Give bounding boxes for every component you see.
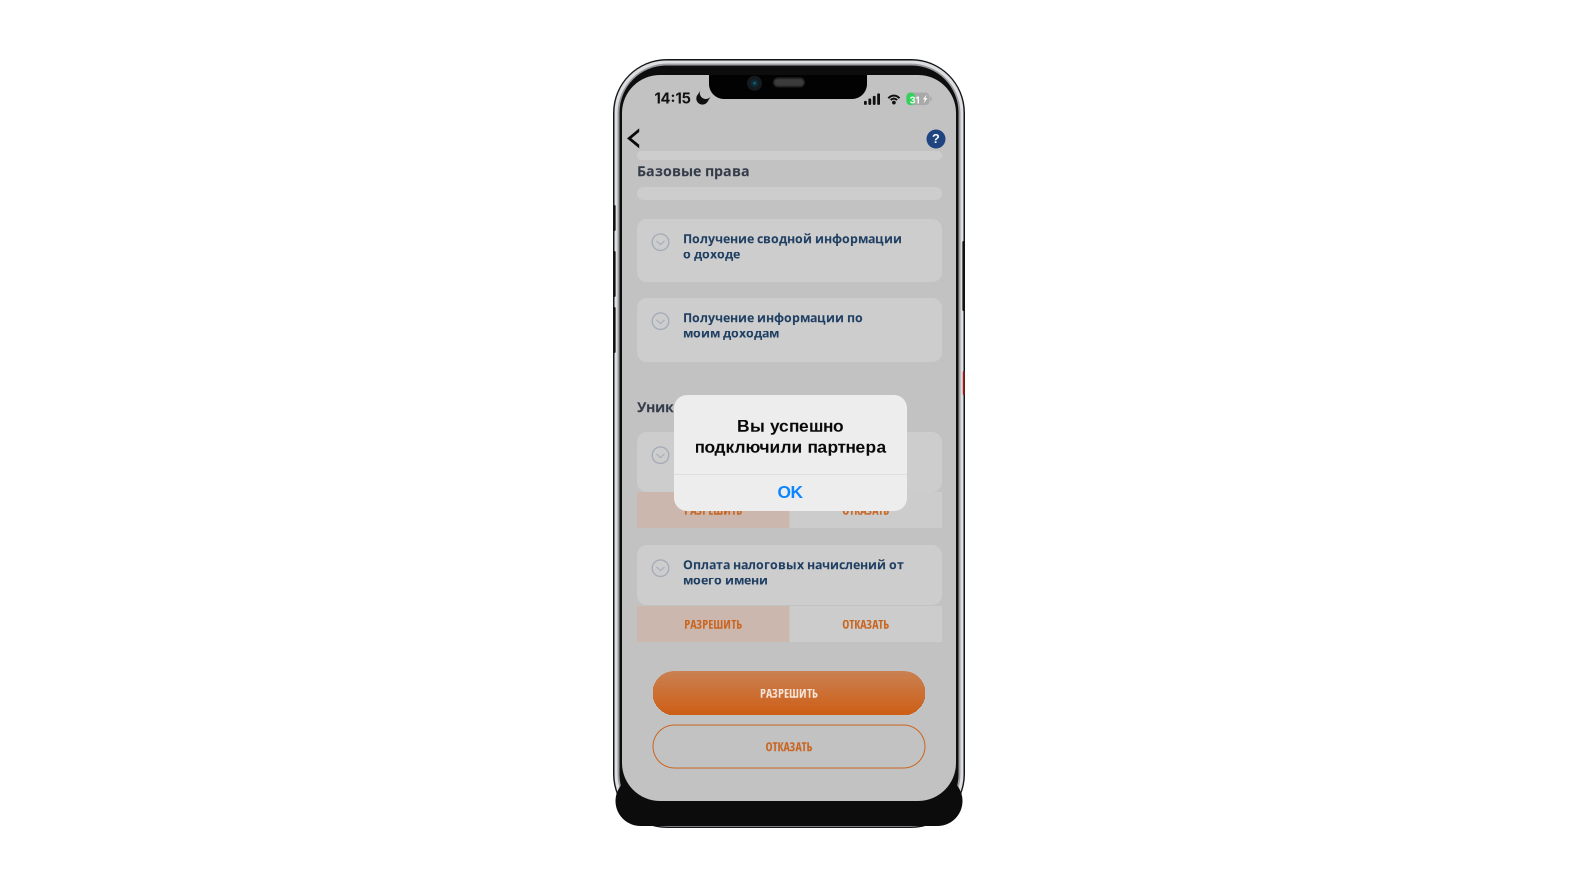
staticText: Оплата налоговых начислений от [683,556,904,573]
staticText: подключили партнера [694,437,886,456]
button[interactable]: ОТКАЗАТЬ [653,725,925,768]
button[interactable]: РАЗРЕШИТЬ [637,606,789,642]
button[interactable]: Оплата налоговых начислений от [637,545,942,605]
staticText: о доходе [683,245,740,262]
staticText: Вы успешно [737,416,844,435]
button[interactable]: Получение сводной информации [637,219,942,282]
button[interactable]: РАЗРЕШИТЬ [637,492,789,528]
staticText: Получение информации о [683,443,855,460]
staticText: РАЗРЕШИТЬ [684,502,742,518]
button[interactable]: РАЗРЕШИТЬ [653,671,925,715]
staticText: ОТКАЗАТЬ [842,616,889,632]
staticText: РАЗРЕШИТЬ [684,616,742,632]
staticText: моим доходам [683,324,779,341]
button[interactable]: ОТКАЗАТЬ [789,606,942,642]
staticText: ОТКАЗАТЬ [765,738,812,755]
button[interactable]: OK [674,474,907,510]
button[interactable]: Помощь [920,123,952,155]
button[interactable]: Назад [618,117,648,159]
staticText: Получение информации по [683,309,863,326]
staticText: Уникальные права [637,397,779,416]
staticText: OK [777,482,803,502]
staticText: моего имени [683,571,768,588]
staticText: Получение сводной информации [683,230,902,247]
staticText: 31 [909,94,919,106]
staticText: ? [932,131,940,146]
button[interactable]: ОТКАЗАТЬ [789,492,942,528]
button[interactable]: Получение информации о [637,432,942,492]
button[interactable]: Получение информации по [637,298,942,362]
staticText: Базовые права [637,161,750,180]
staticText: 14:15 [654,89,690,107]
staticText: начислениях [683,458,767,475]
staticText: РАЗРЕШИТЬ [760,685,818,701]
staticText: ОТКАЗАТЬ [842,502,889,518]
